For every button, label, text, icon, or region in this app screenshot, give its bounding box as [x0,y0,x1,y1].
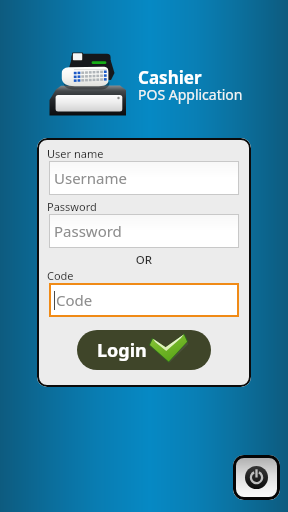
staticText: Password [54,221,122,241]
button[interactable]: Power off [233,455,280,500]
staticText: Username [54,168,127,188]
staticText: User name [47,146,104,161]
button[interactable]: Code [49,283,239,317]
staticText: Cashier [138,66,202,89]
staticText: POS Application [138,85,243,104]
button[interactable]: Username [49,161,239,195]
staticText: OR [37,252,251,268]
button[interactable]: Password [49,214,239,248]
button[interactable]: Login [77,330,211,370]
staticText: Code [47,268,74,283]
staticText: Password [47,199,97,214]
staticText: Login [97,338,147,363]
staticText: Code [56,290,93,310]
